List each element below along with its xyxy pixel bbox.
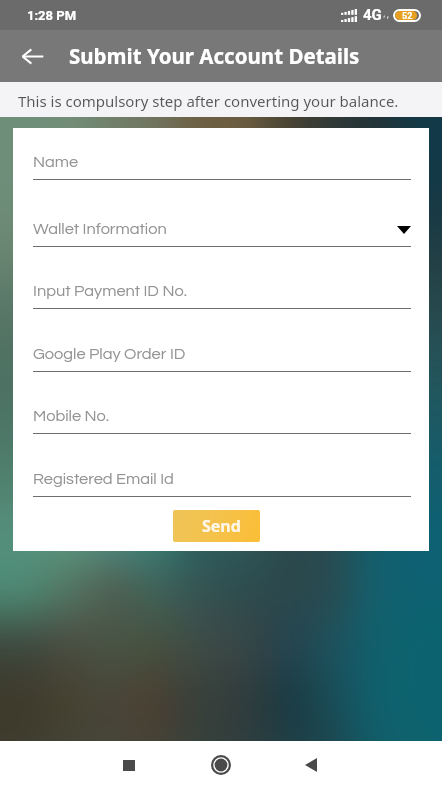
button[interactable]: Back bbox=[289, 742, 333, 786]
button[interactable]: Home bbox=[199, 742, 243, 786]
button[interactable]: Send bbox=[173, 510, 260, 542]
button[interactable]: Registered Email Id bbox=[33, 462, 411, 497]
button[interactable]: Wallet Information bbox=[33, 212, 411, 247]
button[interactable]: Recent apps bbox=[107, 742, 151, 786]
staticText: Registered Email Id bbox=[33, 471, 174, 488]
button[interactable]: Name bbox=[33, 145, 411, 180]
button[interactable]: Back bbox=[12, 36, 52, 76]
staticText: 1:28 PM bbox=[27, 8, 77, 23]
staticText: This is compulsory step after converting… bbox=[18, 91, 399, 111]
staticText: Google Play Order ID bbox=[33, 346, 186, 363]
button[interactable]: Google Play Order ID bbox=[33, 337, 411, 372]
staticText: Mobile No. bbox=[33, 408, 110, 425]
staticText: Send bbox=[202, 515, 241, 537]
staticText: 52 bbox=[402, 11, 413, 20]
staticText: Wallet Information bbox=[33, 221, 167, 238]
staticText: Input Payment ID No. bbox=[33, 283, 187, 300]
staticText: 4G bbox=[363, 6, 382, 24]
button[interactable]: Input Payment ID No. bbox=[33, 274, 411, 309]
button[interactable]: Mobile No. bbox=[33, 399, 411, 434]
staticText: Submit Your Account Details bbox=[69, 42, 360, 70]
staticText: Name bbox=[33, 154, 79, 171]
